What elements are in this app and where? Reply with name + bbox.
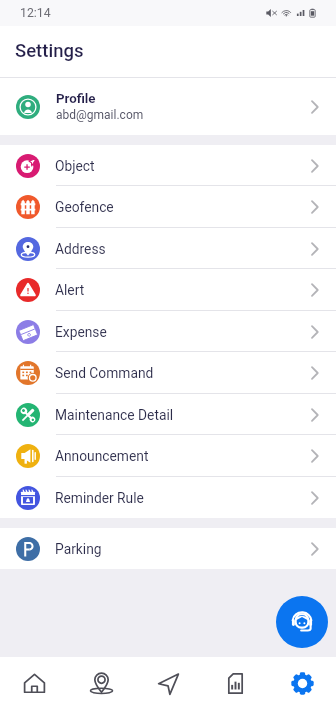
button[interactable]: Parking [0,528,336,569]
button[interactable]: Home [0,657,68,710]
staticText: Settings [15,40,84,62]
button[interactable]: Alert [0,269,336,311]
staticText: Reminder Rule [55,490,144,506]
staticText: abd@gmail.com [56,108,144,122]
staticText: Send Command [55,365,154,381]
button[interactable]: Send Command [0,352,336,394]
button[interactable]: Announcement [0,435,336,477]
staticText: Expense [55,324,107,340]
staticText: Geofence [55,199,114,215]
button[interactable]: Places [68,657,135,710]
button[interactable]: Navigate [135,657,202,710]
staticText: Announcement [55,448,149,464]
staticText: Object [55,158,95,174]
button[interactable]: Object [0,145,336,186]
staticText: Parking [55,541,102,557]
button[interactable]: Address [0,228,336,269]
staticText: Alert [55,282,85,298]
button[interactable]: Maintenance Detail [0,394,336,435]
button[interactable]: Expense [0,311,336,352]
staticText: Address [55,241,106,257]
button[interactable]: Reminder Rule [0,477,336,518]
button[interactable]: Support [276,596,328,648]
staticText: Maintenance Detail [55,407,174,423]
button[interactable]: Reports [202,657,269,710]
button[interactable]: Settings [269,657,336,710]
button[interactable]: Geofence [0,186,336,228]
staticText: Profile [56,91,96,107]
staticText: 12:14 [20,6,51,20]
button[interactable]: Profile [0,78,336,135]
